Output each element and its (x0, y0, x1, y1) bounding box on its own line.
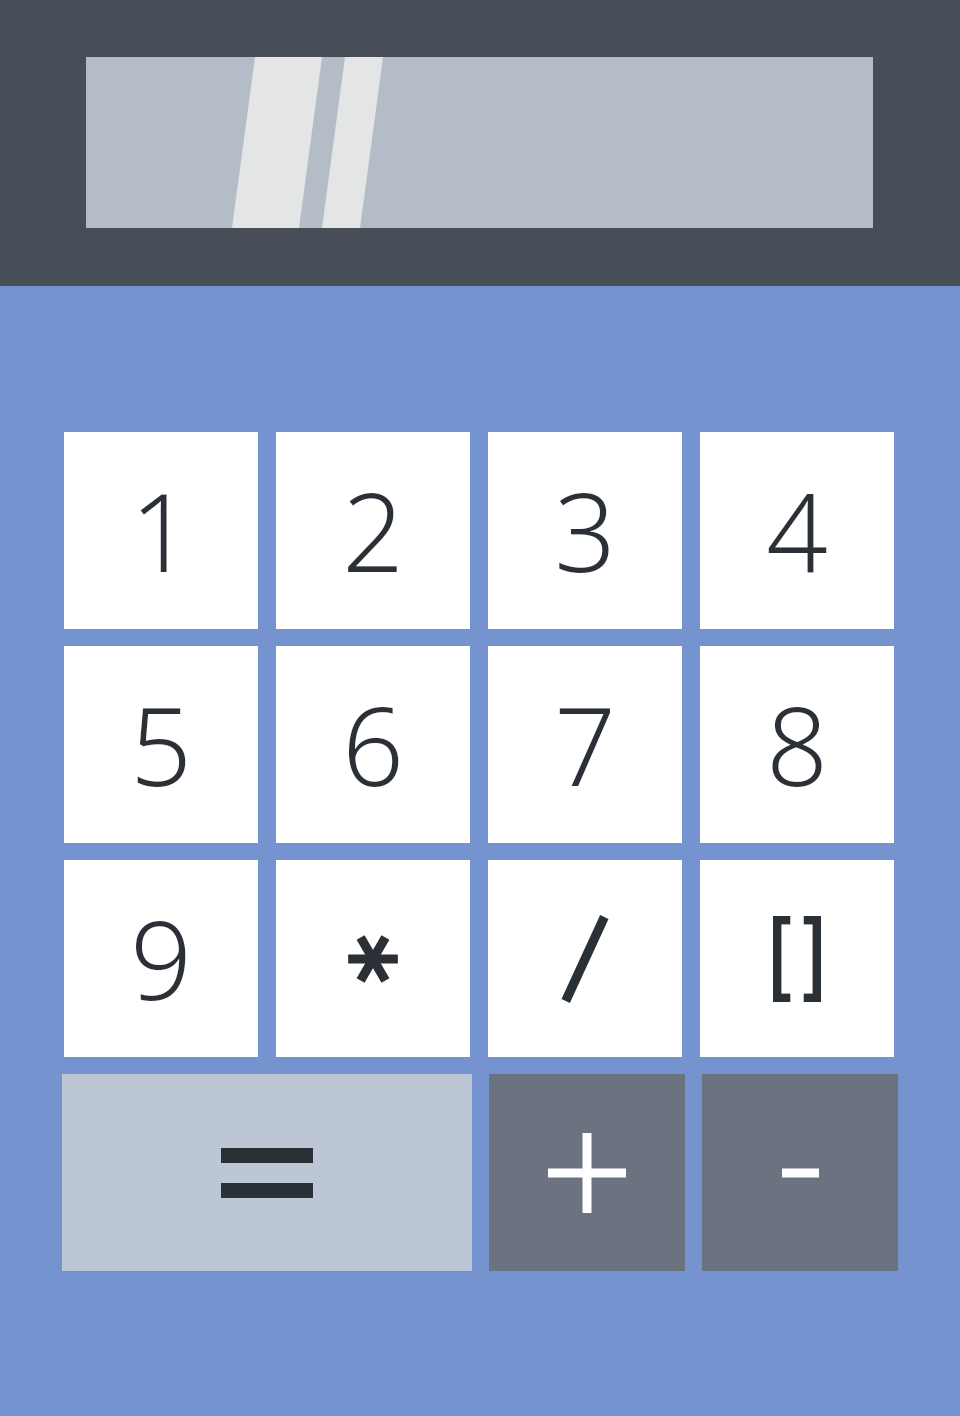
button[interactable]: 6 (276, 646, 470, 843)
button[interactable]: 8 (700, 646, 894, 843)
button[interactable] (86, 57, 873, 228)
button[interactable]: Divide (488, 860, 682, 1057)
button[interactable]: 3 (488, 432, 682, 629)
button[interactable]: Equals (62, 1074, 472, 1271)
staticText: 2 (342, 457, 404, 604)
button[interactable]: Minus (702, 1074, 898, 1271)
button[interactable]: 1 (64, 432, 258, 629)
button[interactable]: 5 (64, 646, 258, 843)
button[interactable]: 9 (64, 860, 258, 1057)
staticText: 1 (130, 457, 192, 604)
staticText: 3 (554, 457, 616, 604)
staticText: 4 (766, 457, 828, 604)
button[interactable]: Brackets (700, 860, 894, 1057)
staticText: 6 (342, 671, 404, 818)
button[interactable]: 2 (276, 432, 470, 629)
button[interactable]: Multiply (276, 860, 470, 1057)
staticText: 7 (554, 671, 616, 818)
button[interactable]: 7 (488, 646, 682, 843)
button[interactable]: Plus (489, 1074, 685, 1271)
staticText: 9 (130, 885, 192, 1032)
staticText: 8 (766, 671, 828, 818)
button[interactable]: 4 (700, 432, 894, 629)
staticText: 5 (130, 671, 192, 818)
